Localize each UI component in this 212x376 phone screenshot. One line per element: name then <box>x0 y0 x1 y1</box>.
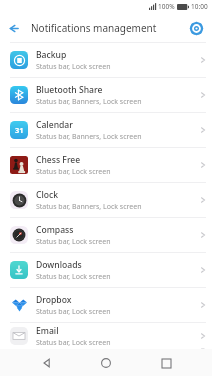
button[interactable]: Email <box>0 323 212 349</box>
button[interactable]: Dropbox <box>0 288 212 322</box>
staticText: Status bar, Lock screen <box>36 338 111 348</box>
button[interactable]: Back <box>34 350 60 376</box>
button[interactable]: Recent apps <box>153 350 179 376</box>
staticText: 31 <box>15 125 24 135</box>
staticText: Status bar, Lock screen <box>36 307 111 317</box>
staticText: Status bar, Banners, Lock screen <box>36 202 142 212</box>
staticText: Downloads <box>36 259 82 271</box>
button[interactable]: Downloads <box>0 253 212 287</box>
staticText: 100% <box>158 2 175 11</box>
staticText: Chess Free <box>36 154 81 166</box>
staticText: Status bar, Lock screen <box>36 167 111 177</box>
staticText: Dropbox <box>36 294 72 306</box>
staticText: Clock <box>36 189 59 201</box>
staticText: Status bar, Lock screen <box>36 62 111 72</box>
staticText: 10:00 <box>191 2 208 11</box>
staticText: Status bar, Banners, Lock screen <box>36 132 142 142</box>
staticText: Status bar, Banners, Lock screen <box>36 97 142 107</box>
staticText: Bluetooth Share <box>36 84 103 96</box>
button[interactable]: Compass <box>0 218 212 252</box>
staticText: Compass <box>36 224 74 236</box>
button[interactable]: Chess Free <box>0 148 212 182</box>
button[interactable]: Home <box>93 350 119 376</box>
staticText: Backup <box>36 49 67 61</box>
staticText: Email <box>36 325 59 337</box>
button[interactable]: Back <box>0 15 26 41</box>
button[interactable]: Settings <box>184 16 208 40</box>
button[interactable]: Backup <box>0 43 212 77</box>
button[interactable]: Clock <box>0 183 212 217</box>
staticText: Status bar, Lock screen <box>36 272 111 282</box>
staticText: Status bar, Lock screen <box>36 237 111 247</box>
button[interactable]: 31 <box>0 113 212 147</box>
staticText: Notifications management <box>31 21 157 35</box>
staticText: Calendar <box>36 119 73 131</box>
button[interactable]: Bluetooth Share <box>0 78 212 112</box>
